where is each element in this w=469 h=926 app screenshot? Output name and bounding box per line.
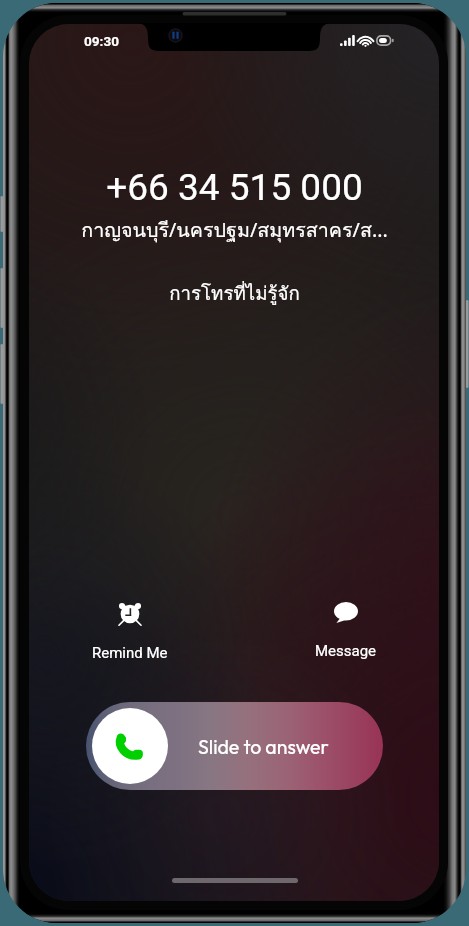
- staticText: +66 34 515 000: [106, 166, 363, 209]
- staticText: กาญจนบุรี/นครปฐม/สมุทรสาคร/ส...: [81, 214, 388, 245]
- staticText: Slide to answer: [198, 734, 329, 759]
- button[interactable]: Slide to answer: [86, 702, 383, 790]
- button[interactable]: Message: [301, 596, 391, 666]
- staticText: Message: [315, 642, 377, 660]
- button[interactable]: Answer call: [92, 708, 168, 784]
- staticText: การโทรที่ไม่รู้จัก: [169, 279, 300, 309]
- staticText: Remind Me: [92, 644, 168, 662]
- staticText: 09:30: [84, 33, 120, 49]
- button[interactable]: Remind Me: [85, 596, 175, 668]
